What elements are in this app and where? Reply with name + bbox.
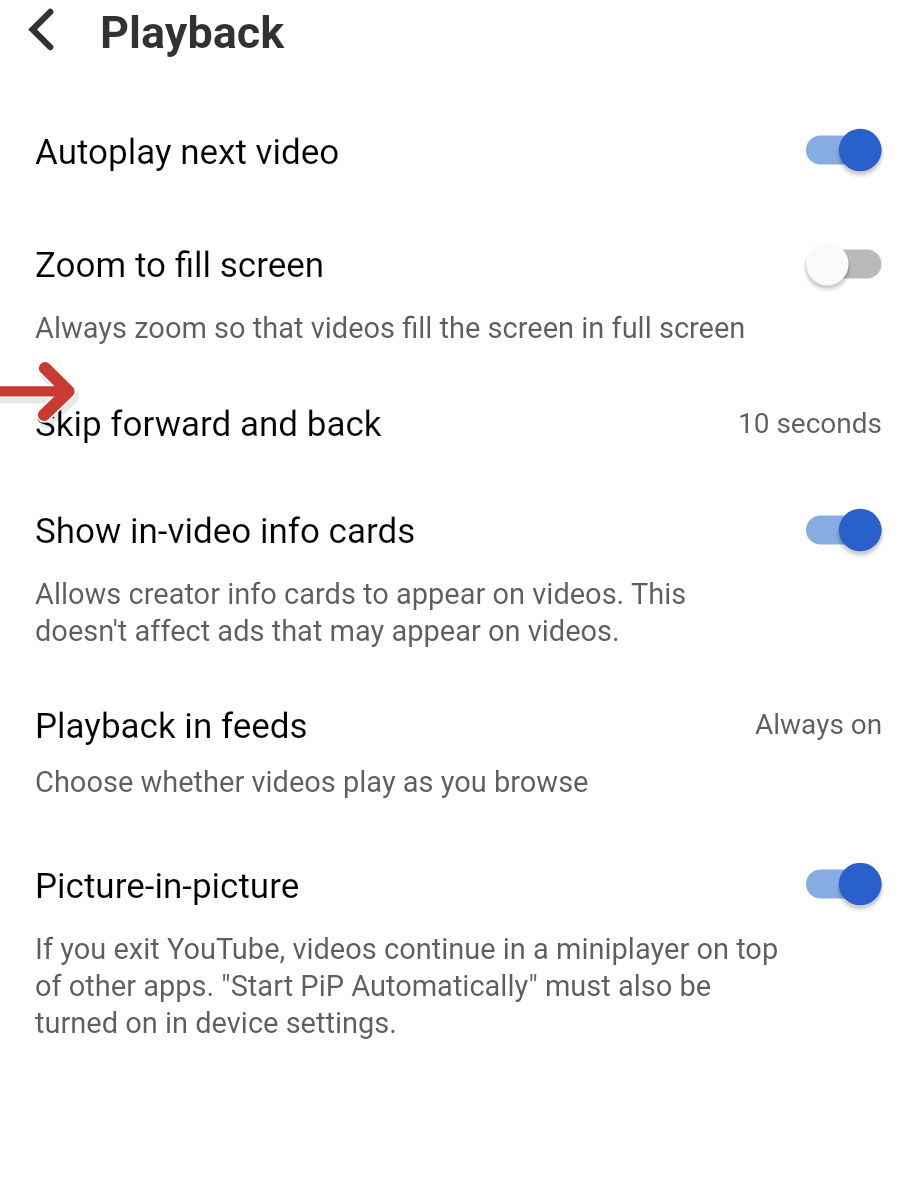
button[interactable]: Show in-video info cards: [794, 498, 894, 562]
staticText: Picture-in-picture: [35, 866, 300, 907]
staticText: Choose whether videos play as you browse: [35, 765, 782, 799]
staticText: Always zoom so that videos fill the scre…: [35, 311, 782, 345]
staticText: If you exit YouTube, videos continue in …: [35, 932, 782, 1040]
button[interactable]: Picture-in-picture: [0, 860, 916, 1046]
staticText: Zoom to fill screen: [35, 245, 325, 286]
staticText: Playback in feeds: [35, 706, 308, 747]
staticText: Autoplay next video: [35, 132, 340, 173]
staticText: 10 seconds: [738, 407, 883, 440]
button[interactable]: Skip forward and back: [0, 398, 916, 474]
staticText: Allows creator info cards to appear on v…: [35, 577, 782, 648]
button[interactable]: Playback in feeds: [0, 699, 916, 817]
button[interactable]: Autoplay next video: [0, 125, 916, 201]
button[interactable]: Picture-in-picture: [794, 852, 894, 916]
button[interactable]: Zoom to fill screen: [794, 232, 894, 296]
button[interactable]: Autoplay next video: [794, 118, 894, 182]
button[interactable]: Zoom to fill screen: [0, 238, 916, 356]
button[interactable]: Back: [16, 3, 62, 49]
staticText: Always on: [755, 708, 883, 741]
staticText: Show in-video info cards: [35, 511, 416, 552]
staticText: Skip forward and back: [35, 404, 382, 445]
staticText: Playback: [100, 6, 285, 59]
button[interactable]: Show in-video info cards: [0, 504, 916, 656]
